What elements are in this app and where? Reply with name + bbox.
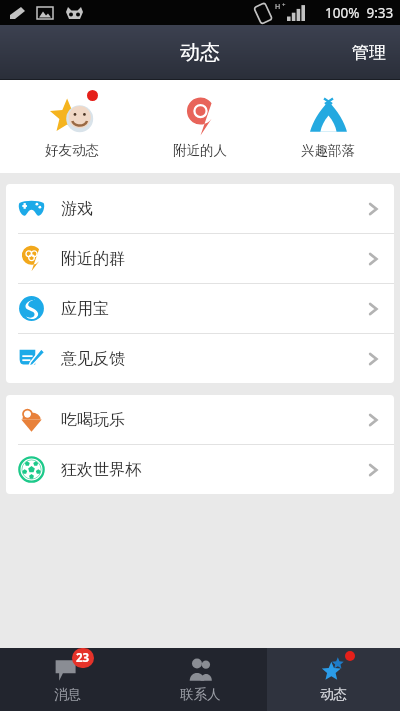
button[interactable]: 好友动态 — [16, 80, 128, 173]
staticText: 好友动态 — [45, 142, 99, 159]
button[interactable]: 23 — [0, 648, 134, 711]
button[interactable]: 兴趣部落 — [272, 80, 384, 173]
button[interactable]: 游戏 — [6, 184, 394, 233]
button[interactable]: 附近的群 — [6, 234, 394, 283]
button[interactable]: 联系人 — [134, 648, 267, 711]
staticText: 附近的群 — [61, 249, 366, 269]
other: 附近的人 — [178, 94, 223, 139]
button[interactable]: 意见反馈 — [6, 334, 394, 383]
staticText: 消息 — [54, 686, 81, 703]
staticText: 联系人 — [180, 686, 221, 703]
staticText: 应用宝 — [61, 299, 366, 319]
button[interactable]: 应用宝 — [6, 284, 394, 333]
staticText: 动态 — [320, 686, 347, 703]
staticText: 管理 — [352, 42, 386, 63]
staticText: 狂欢世界杯 — [61, 460, 366, 480]
other: 好友动态 — [50, 94, 95, 139]
staticText: H — [275, 2, 281, 12]
staticText: + — [282, 1, 286, 9]
button[interactable]: 狂欢世界杯 — [6, 445, 394, 494]
button[interactable]: 附近的人 — [144, 80, 256, 173]
button[interactable]: 动态 — [267, 648, 400, 711]
staticText: 动态 — [180, 40, 220, 65]
button[interactable]: 管理 — [338, 25, 400, 80]
staticText: 吃喝玩乐 — [61, 410, 366, 430]
staticText: 23 — [76, 650, 90, 666]
staticText: 游戏 — [61, 199, 366, 219]
staticText: 意见反馈 — [61, 349, 366, 369]
staticText: 兴趣部落 — [301, 142, 355, 159]
staticText: 附近的人 — [173, 142, 227, 159]
staticText: 100% 9:33 — [325, 4, 394, 22]
button[interactable]: 吃喝玩乐 — [6, 395, 394, 444]
other: 兴趣部落 — [306, 94, 351, 139]
